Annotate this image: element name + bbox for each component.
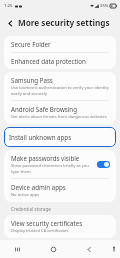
button[interactable]: Install unknown apps [4,127,116,147]
staticText: 35% [100,3,109,9]
button[interactable]: Device admin apps [4,179,116,202]
staticText: Get alerts about threats from dangerous … [11,114,107,120]
button[interactable]: Enhanced data protection [4,53,116,69]
staticText: More security settings [18,17,110,28]
staticText: 1:26 [4,3,13,9]
button[interactable]: Android Safe Browsing [4,101,116,124]
button[interactable]: Navigate up [3,16,17,30]
staticText: Enhanced data protection [11,57,86,65]
button[interactable]: Samsung Pass [4,72,116,100]
staticText: Use biometric authentication to verify y… [11,85,110,96]
staticText: No active apps [11,192,40,198]
staticText: Secure Folder [11,40,51,48]
staticText: Show password characters briefly as you … [11,163,94,174]
button[interactable]: Secure Folder [4,36,116,52]
staticText: Device admin apps [11,183,66,191]
button[interactable]: View security certificates [4,215,116,238]
button[interactable]: Recent apps [0,240,35,258]
button[interactable]: Make passwords visible [97,161,110,168]
button[interactable]: Pin window [107,240,120,258]
staticText: Credential storage [11,206,51,212]
staticText: Display trusted CA certificates [11,228,69,234]
staticText: Android Safe Browsing [11,105,77,113]
staticText: Install unknown apps [9,133,72,141]
staticText: Make passwords visible [11,154,80,162]
staticText: View security certificates [11,219,83,227]
staticText: Samsung Pass [11,76,53,84]
button[interactable]: Home [35,240,71,258]
button[interactable]: Back [71,240,107,258]
button[interactable]: Make passwords visible [4,150,116,178]
